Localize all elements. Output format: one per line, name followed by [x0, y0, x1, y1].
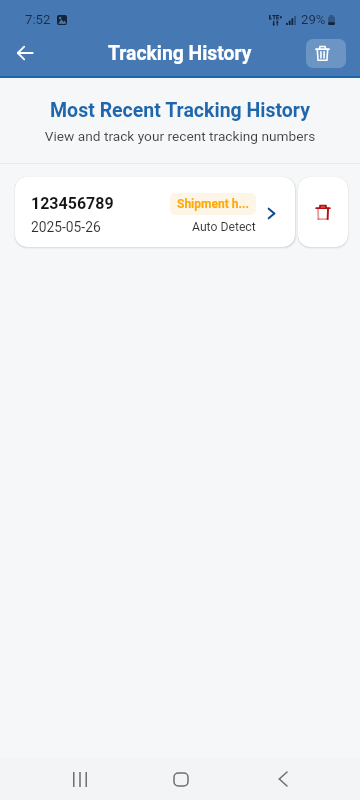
staticText: Shipment h...	[177, 197, 249, 211]
staticText: Auto Detect	[192, 220, 256, 234]
button[interactable]: Back	[259, 758, 307, 800]
button[interactable]: Home	[157, 758, 205, 800]
button[interactable]: Delete	[298, 177, 348, 247]
staticText: 29%	[301, 12, 326, 27]
staticText: 2025-05-26	[31, 219, 101, 235]
button[interactable]: Back	[7, 35, 43, 71]
staticText: View and track your recent tracking numb…	[0, 128, 360, 144]
staticText: 7:52	[25, 12, 51, 27]
button[interactable]: Delete all	[306, 39, 346, 68]
button[interactable]: Recent apps	[56, 758, 104, 800]
button[interactable]: 123456789	[15, 177, 295, 247]
staticText: Most Recent Tracking History	[0, 99, 360, 122]
staticText: Tracking History	[108, 42, 252, 65]
staticText: 123456789	[31, 194, 114, 213]
